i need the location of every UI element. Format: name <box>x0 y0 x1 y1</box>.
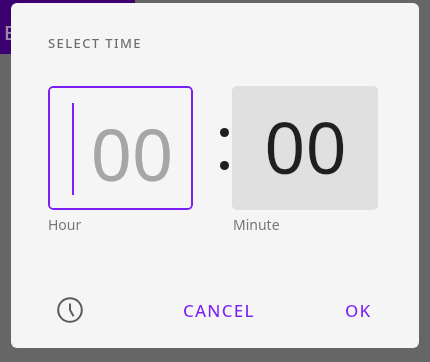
staticText: OK <box>345 299 372 322</box>
button[interactable]: Switch to clock mode <box>48 288 92 332</box>
staticText: Hour <box>48 215 82 234</box>
button[interactable]: CANCEL <box>173 291 265 329</box>
staticText: B <box>4 19 18 46</box>
staticText: CANCEL <box>183 299 255 322</box>
staticText: Minute <box>233 215 280 234</box>
staticText: 00 <box>76 104 188 202</box>
staticText: 00 <box>264 97 347 195</box>
button[interactable]: 00 <box>232 86 378 210</box>
button[interactable]: OK <box>335 291 382 329</box>
button[interactable]: 00 <box>48 86 193 210</box>
staticText: SELECT TIME <box>48 34 142 52</box>
